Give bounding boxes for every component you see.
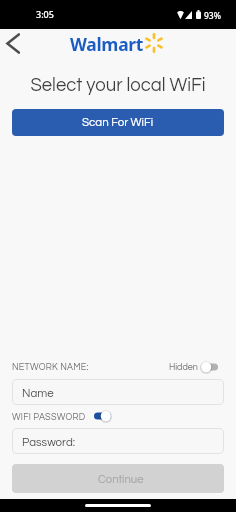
button[interactable]: Password: [12,428,224,454]
staticText: Password: [22,437,76,449]
button[interactable]: Toggle on [94,410,111,422]
staticText: 93% [204,10,221,19]
staticText: Select your local WiFi [0,76,236,95]
button[interactable]: Scan For WiFi [12,109,224,136]
button[interactable]: Continue [12,464,224,493]
staticText: Walmart [70,32,144,56]
staticText: WIFI PASSWORD [12,413,86,422]
button[interactable]: Back [1,30,25,57]
staticText: Scan For WiFi [82,117,154,129]
staticText: 3:05 [36,8,54,20]
staticText: Name [22,388,54,400]
button[interactable]: Name [12,379,224,405]
staticText: Continue [98,474,144,486]
staticText: Hidden [169,363,198,372]
button[interactable]: Toggle off [201,361,218,373]
staticText: NETWORK NAME: [12,363,89,372]
